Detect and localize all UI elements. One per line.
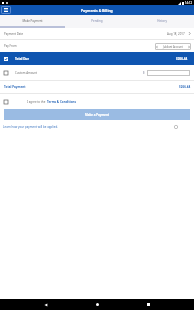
button[interactable]: Pending	[64, 15, 129, 26]
staticText: Pending	[91, 19, 103, 23]
button[interactable]: Total Due	[0, 52, 194, 65]
staticText: Payments & Billing	[81, 8, 113, 13]
button[interactable]: Recent apps	[143, 299, 154, 310]
button[interactable]: Custom Amount	[0, 65, 194, 80]
button[interactable]: Make a Payment	[4, 109, 190, 120]
button[interactable]: Learn how your payment will be applied.	[3, 125, 59, 129]
staticText: Total Due	[15, 57, 30, 61]
staticText: Total Payment	[4, 85, 26, 89]
button[interactable]	[147, 70, 190, 76]
staticText: Make Payment	[22, 19, 43, 23]
staticText: $266.44	[176, 57, 188, 61]
button[interactable]: Help	[174, 125, 178, 129]
staticText: Payment Date	[4, 32, 24, 36]
button[interactable]: Home	[92, 299, 103, 310]
staticText: Custom Amount	[15, 71, 38, 75]
staticText: Pay From	[4, 44, 17, 48]
staticText: I agree to the	[27, 100, 47, 104]
staticText: 14:12	[185, 1, 193, 5]
staticText: History	[157, 19, 167, 23]
button[interactable]: Jubilant Account	[155, 43, 191, 50]
staticText: $266.44	[179, 85, 191, 89]
staticText: Terms & Conditions	[47, 100, 76, 104]
button[interactable]: I agree to the	[0, 94, 194, 109]
button[interactable]: Payment Date	[0, 28, 194, 39]
staticText: Aug 18, 2017	[167, 32, 185, 36]
button[interactable]: Make Payment	[0, 15, 64, 26]
staticText: $	[143, 71, 145, 75]
button[interactable]: Pay From	[0, 40, 194, 52]
button[interactable]: History	[129, 15, 194, 26]
staticText: Jubilant Account	[163, 45, 183, 49]
button[interactable]: Open navigation menu	[1, 6, 11, 14]
staticText: Make a Payment	[85, 113, 110, 117]
button[interactable]: Total Payment	[0, 81, 194, 93]
button[interactable]: Back	[40, 299, 51, 310]
